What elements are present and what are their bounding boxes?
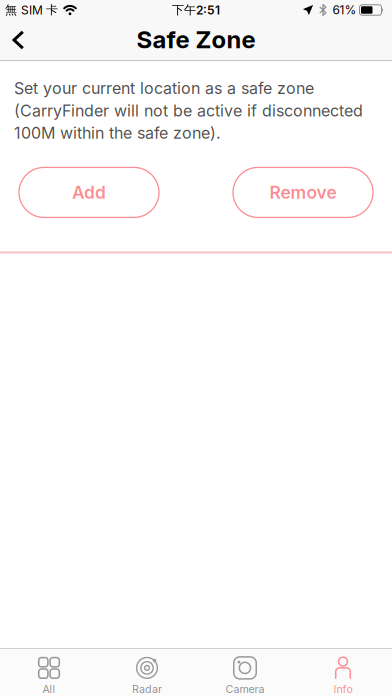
staticText: Camera [225, 683, 264, 695]
button[interactable]: Remove [233, 167, 373, 217]
staticText: (CarryFinder will not be active if disco… [14, 101, 363, 120]
button[interactable]: Back [0, 20, 25, 60]
button[interactable]: Radar [98, 649, 196, 696]
button[interactable]: Camera [196, 649, 294, 696]
staticText: Radar [132, 683, 162, 695]
staticText: 61% [332, 3, 356, 17]
staticText: Safe Zone [136, 25, 255, 54]
staticText: Add [72, 182, 106, 203]
staticText: Info [333, 683, 352, 695]
staticText: 100M within the safe zone). [14, 124, 221, 142]
button[interactable]: All [0, 649, 98, 696]
staticText: Set your current location as a safe zone [14, 79, 314, 98]
staticText: 無 SIM 卡 [5, 3, 58, 17]
staticText: Remove [269, 182, 336, 203]
staticText: 下午2:51 [172, 3, 220, 17]
button[interactable]: Info [294, 649, 392, 696]
button[interactable]: Add [19, 167, 159, 217]
staticText: All [42, 683, 55, 695]
